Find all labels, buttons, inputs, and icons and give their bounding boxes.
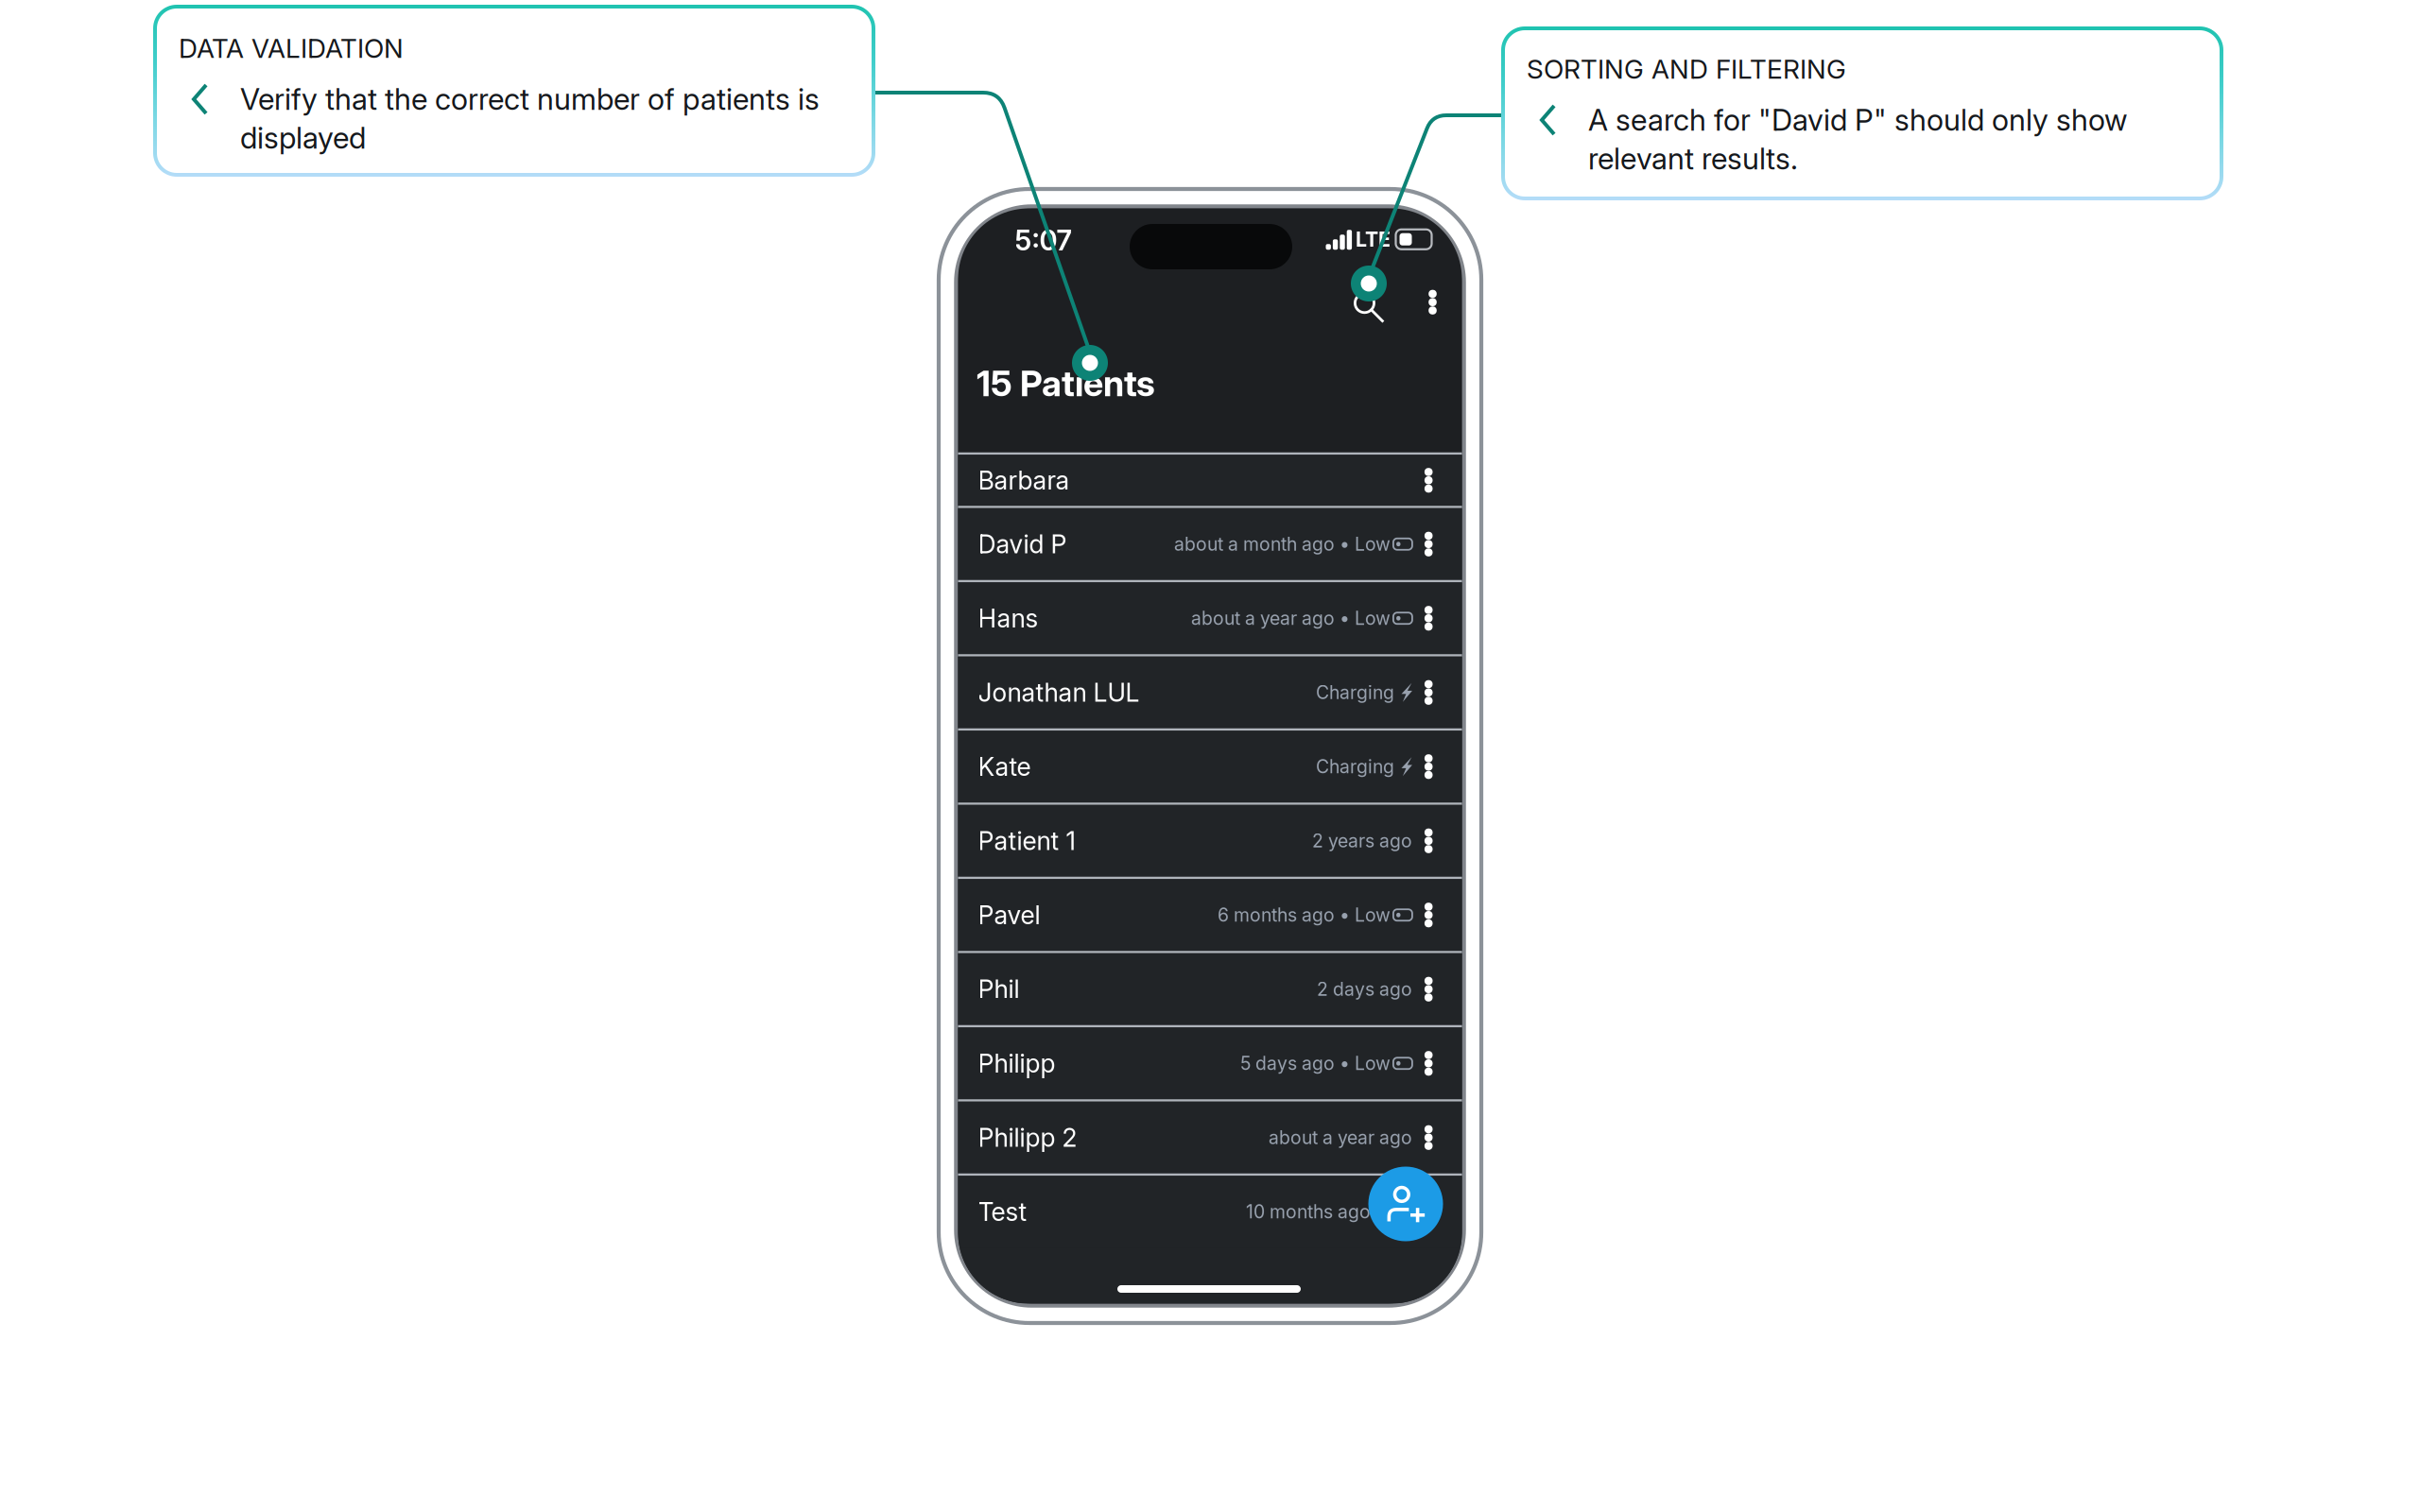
- button[interactable]: Hans: [958, 582, 1462, 654]
- staticText: Test: [978, 1196, 1027, 1227]
- staticText: about a year ago: [1269, 1127, 1412, 1149]
- staticText: Charging: [1316, 756, 1394, 778]
- staticText: displayed: [240, 120, 366, 156]
- staticText: relevant results.: [1588, 141, 1798, 177]
- staticText: 5 days ago • Low: [1240, 1052, 1390, 1074]
- button[interactable]: More options: [1412, 276, 1453, 329]
- staticText: about a year ago • Low: [1191, 607, 1390, 629]
- staticText: 6 months ago • Low: [1217, 904, 1390, 926]
- staticText: David P: [978, 529, 1067, 559]
- button[interactable]: Phil: [958, 953, 1462, 1025]
- staticText: Verify that the correct number of patien…: [240, 81, 820, 117]
- staticText: Pavel: [978, 900, 1040, 930]
- button[interactable]: Pavel: [958, 879, 1462, 951]
- staticText: 10 months ago • Lo: [1246, 1201, 1412, 1223]
- staticText: 2 years ago: [1312, 830, 1412, 852]
- staticText: Jonathan LUL: [978, 677, 1140, 708]
- staticText: 5:07: [1015, 223, 1072, 257]
- staticText: Philipp 2: [978, 1122, 1077, 1153]
- staticText: Barbara: [978, 465, 1070, 496]
- staticText: 15 Patients: [977, 362, 1155, 405]
- button[interactable]: Philipp 2: [958, 1102, 1462, 1174]
- staticText: Hans: [978, 603, 1038, 634]
- staticText: DATA VALIDATION: [179, 32, 404, 64]
- button[interactable]: Jonathan LUL: [958, 657, 1462, 728]
- staticText: Phil: [978, 974, 1020, 1004]
- button[interactable]: David P: [958, 508, 1462, 580]
- staticText: LTE: [1356, 227, 1391, 251]
- staticText: Philipp: [978, 1048, 1055, 1079]
- staticText: Patient 1: [978, 826, 1075, 856]
- button[interactable]: Philipp: [958, 1027, 1462, 1099]
- staticText: A search for "David P" should only show: [1588, 102, 2128, 138]
- staticText: 2 days ago: [1317, 978, 1412, 1000]
- button[interactable]: Add patient: [1368, 1167, 1443, 1241]
- staticText: Kate: [978, 751, 1031, 782]
- staticText: about a month ago • Low: [1174, 533, 1390, 555]
- button[interactable]: Kate: [958, 731, 1462, 802]
- button[interactable]: Test: [958, 1176, 1462, 1248]
- staticText: Charging: [1316, 681, 1394, 704]
- button[interactable]: Barbara: [958, 455, 1462, 506]
- staticText: SORTING AND FILTERING: [1527, 53, 1846, 85]
- button[interactable]: Search: [1343, 281, 1396, 334]
- button[interactable]: Patient 1: [958, 805, 1462, 877]
